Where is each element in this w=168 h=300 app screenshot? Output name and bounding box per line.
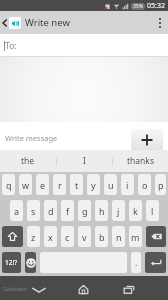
button[interactable]: b: [95, 226, 108, 247]
button[interactable]: t: [70, 174, 83, 195]
staticText: the: [21, 155, 35, 167]
staticText: q: [6, 179, 12, 191]
staticText: 12!?: [5, 258, 18, 267]
staticText: t: [75, 179, 79, 191]
staticText: f: [66, 205, 70, 217]
button[interactable]: c: [61, 226, 74, 247]
staticText: s: [31, 205, 36, 217]
button[interactable]: k: [129, 200, 142, 221]
button[interactable]: o: [138, 174, 151, 195]
staticText: m: [131, 231, 140, 243]
staticText: e: [40, 179, 46, 191]
button[interactable]: e: [36, 174, 49, 195]
staticText: x: [48, 231, 53, 243]
button[interactable]: u: [104, 174, 117, 195]
staticText: .: [135, 257, 138, 269]
staticText: b: [99, 231, 105, 243]
button[interactable]: v: [78, 226, 91, 247]
staticText: n: [116, 231, 122, 243]
button[interactable]: [2, 226, 23, 247]
button[interactable]: I: [57, 150, 112, 172]
staticText: l: [151, 205, 154, 217]
staticText: j: [117, 205, 120, 217]
button[interactable]: [25, 252, 36, 273]
button[interactable]: s: [27, 200, 40, 221]
staticText: Geektech: [3, 285, 28, 292]
button[interactable]: h: [95, 200, 108, 221]
staticText: Write new: [25, 16, 70, 29]
button[interactable]: m: [129, 226, 142, 247]
button[interactable]: Recent apps: [113, 276, 144, 300]
button[interactable]: .: [131, 252, 141, 273]
button[interactable]: n: [112, 226, 125, 247]
button[interactable]: To:: [0, 34, 168, 57]
staticText: d: [48, 205, 54, 217]
staticText: p: [158, 179, 164, 191]
staticText: 35%: [133, 3, 143, 10]
button[interactable]: More options: [152, 11, 168, 34]
staticText: g: [82, 205, 88, 217]
staticText: Write message: [5, 133, 58, 143]
button[interactable]: z: [27, 226, 40, 247]
staticText: i: [126, 179, 129, 191]
staticText: a: [14, 205, 20, 217]
button[interactable]: d: [44, 200, 57, 221]
staticText: thanks: [127, 155, 154, 167]
button[interactable]: [0, 57, 168, 122]
staticText: o: [142, 179, 148, 191]
button[interactable]: p: [155, 174, 166, 195]
staticText: z: [31, 231, 36, 243]
button[interactable]: q: [2, 174, 15, 195]
button[interactable]: Add attachment: [131, 129, 163, 150]
staticText: v: [82, 231, 87, 243]
button[interactable]: App icon: [9, 17, 21, 29]
button[interactable]: l: [146, 200, 159, 221]
button[interactable]: a: [10, 200, 23, 221]
staticText: c: [65, 231, 70, 243]
button[interactable]: 12!?: [2, 252, 21, 273]
button[interactable]: j: [112, 200, 125, 221]
staticText: w: [22, 179, 30, 191]
staticText: To:: [5, 40, 17, 52]
button[interactable]: thanks: [113, 150, 168, 172]
button[interactable]: x: [44, 226, 57, 247]
button[interactable]: Hide keyboard: [23, 277, 54, 300]
staticText: y: [91, 179, 96, 191]
button[interactable]: the: [0, 150, 56, 172]
staticText: r: [58, 179, 62, 191]
staticText: u: [108, 179, 114, 191]
button[interactable]: f: [61, 200, 74, 221]
staticText: 05:32: [147, 1, 165, 11]
staticText: h: [99, 205, 105, 217]
button[interactable]: Home: [68, 276, 99, 300]
button[interactable]: r: [53, 174, 66, 195]
button[interactable]: [145, 252, 166, 273]
button[interactable]: [146, 226, 166, 247]
staticText: k: [133, 205, 138, 217]
button[interactable]: y: [87, 174, 100, 195]
button[interactable]: g: [78, 200, 91, 221]
button[interactable]: w: [19, 174, 32, 195]
staticText: I: [83, 155, 86, 167]
button[interactable]: Navigate up: [0, 11, 9, 34]
button[interactable]: i: [121, 174, 134, 195]
